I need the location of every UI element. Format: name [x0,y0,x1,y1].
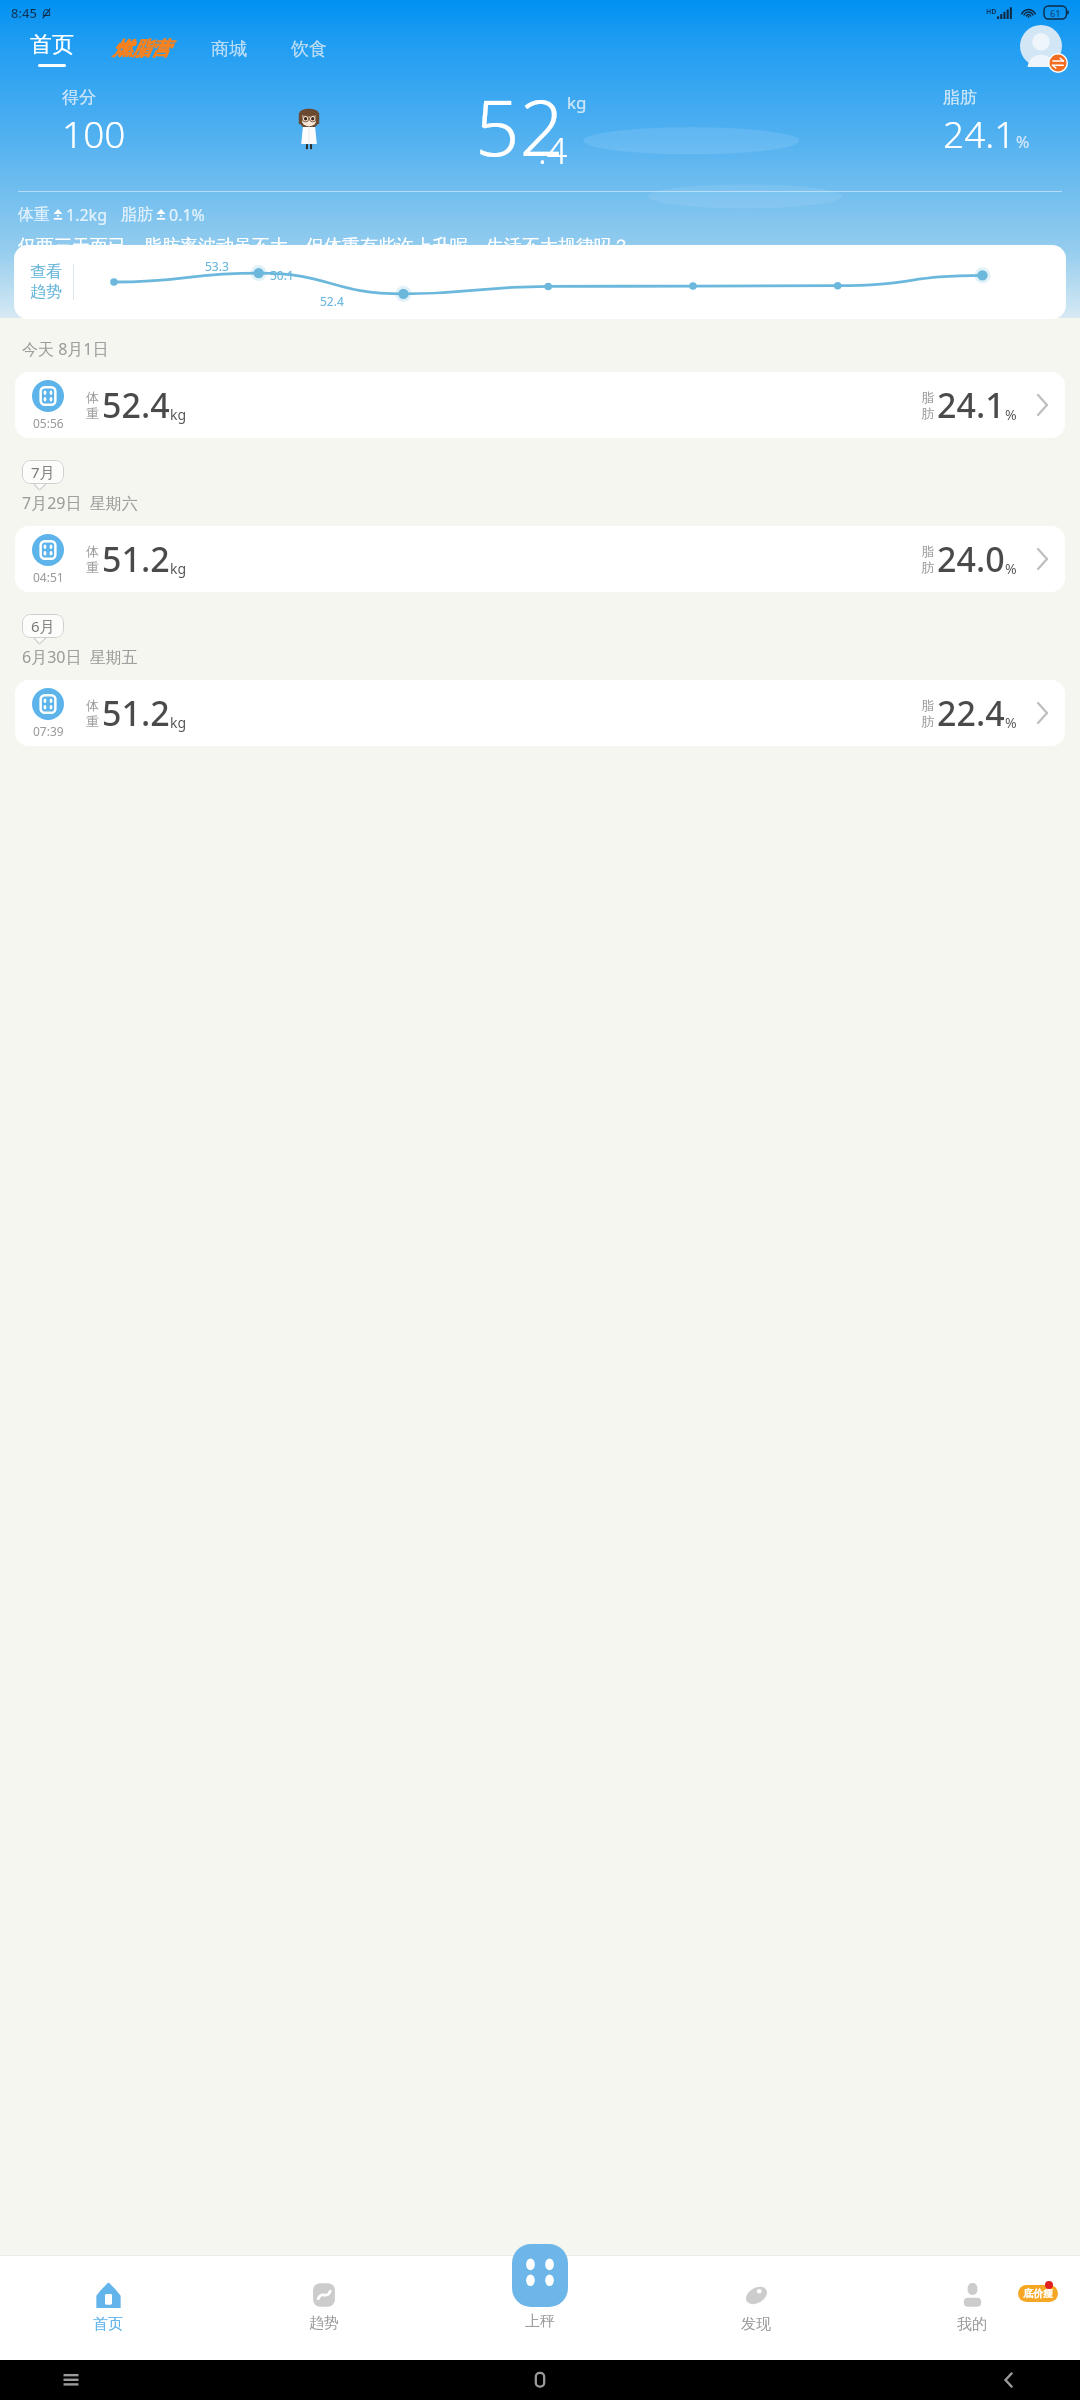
staticText: 53.3 [205,258,229,274]
staticText: 重 [86,559,99,575]
staticText: 52.4 [102,382,170,428]
staticText: 脂 [921,543,934,559]
button[interactable]: Home [529,2369,551,2391]
button[interactable]: 燃脂营 [110,29,173,69]
staticText: 07:39 [33,723,64,739]
staticText: 8:45 [11,4,37,22]
staticText: 脂肪 [943,87,977,108]
staticText: 今天 8月1日 [22,338,109,360]
staticText: 趋势 [309,2314,339,2333]
staticText: 24.0 [937,536,1005,582]
staticText: 6月30日 星期五 [22,646,138,668]
staticText: 体 [86,543,99,559]
staticText: 22.4 [937,690,1005,736]
button[interactable]: 上秤 [512,2244,568,2307]
staticText: HD [986,7,997,17]
button[interactable]: 首页 [0,2255,216,2360]
staticText: 仅两三天而已，脂肪率波动虽不大，但体重有些许上升呢，生活不太规律吗？ [18,235,630,258]
button[interactable]: 首页 [28,31,76,67]
staticText: 得分 [62,87,96,108]
button[interactable]: Recents [60,2369,82,2391]
staticText: 1.2kg [66,204,107,226]
staticText: kg [567,91,587,114]
button[interactable]: 我的 [864,2255,1080,2360]
button[interactable]: 发现 [648,2255,864,2360]
button[interactable]: 趋势 [216,2255,432,2360]
button[interactable]: 05:56 [15,372,1065,438]
staticText: 查看 [30,262,62,282]
button[interactable]: 04:51 [15,526,1065,592]
staticText: 体重 [18,205,50,225]
staticText: 首页 [30,31,74,59]
staticText: 上秤 [525,2312,555,2331]
staticText: .4 [538,126,568,175]
staticText: 肪 [921,405,934,421]
staticText: 重 [86,713,99,729]
staticText: 24.1 [943,108,1016,158]
staticText: 首页 [93,2315,123,2334]
staticText: % [1016,131,1030,153]
staticText: kg [170,713,187,732]
staticText: 0.1% [169,204,205,226]
staticText: 脂 [921,697,934,713]
staticText: 04:51 [33,569,64,585]
button[interactable]: 商城 [207,30,251,69]
staticText: 24.1 [937,382,1005,428]
staticText: kg [170,559,187,578]
button[interactable]: 07:39 [15,680,1065,746]
staticText: 52 [475,73,565,179]
staticText: 体 [86,389,99,405]
staticText: 底价瘦 [1023,2287,1053,2300]
staticText: 体 [86,697,99,713]
staticText: kg [170,405,187,424]
staticText: 51.2 [102,536,170,582]
staticText: % [1005,559,1017,578]
staticText: 52.4 [320,293,344,309]
button[interactable]: Profile [1020,25,1068,73]
staticText: 脂 [921,389,934,405]
staticText: 7月 [31,462,55,482]
staticText: 05:56 [33,415,64,431]
button[interactable]: 饮食 [287,30,331,69]
staticText: 肪 [921,713,934,729]
staticText: 肪 [921,559,934,575]
button[interactable]: 查看 [14,245,1066,319]
staticText: % [1005,405,1017,424]
staticText: 100 [62,108,126,158]
staticText: 趋势 [30,282,62,302]
staticText: 51.2 [102,690,170,736]
staticText: 脂肪 [121,205,153,225]
staticText: 61 [1050,7,1061,19]
button[interactable]: 上秤 [432,2255,648,2360]
staticText: 我的 [957,2315,987,2334]
staticText: % [1005,713,1017,732]
button[interactable]: Back [998,2369,1020,2391]
staticText: 50.1 [270,267,294,283]
staticText: 7月29日 星期六 [22,492,138,514]
staticText: 6月 [31,616,55,636]
staticText: 发现 [741,2315,771,2334]
staticText: 重 [86,405,99,421]
